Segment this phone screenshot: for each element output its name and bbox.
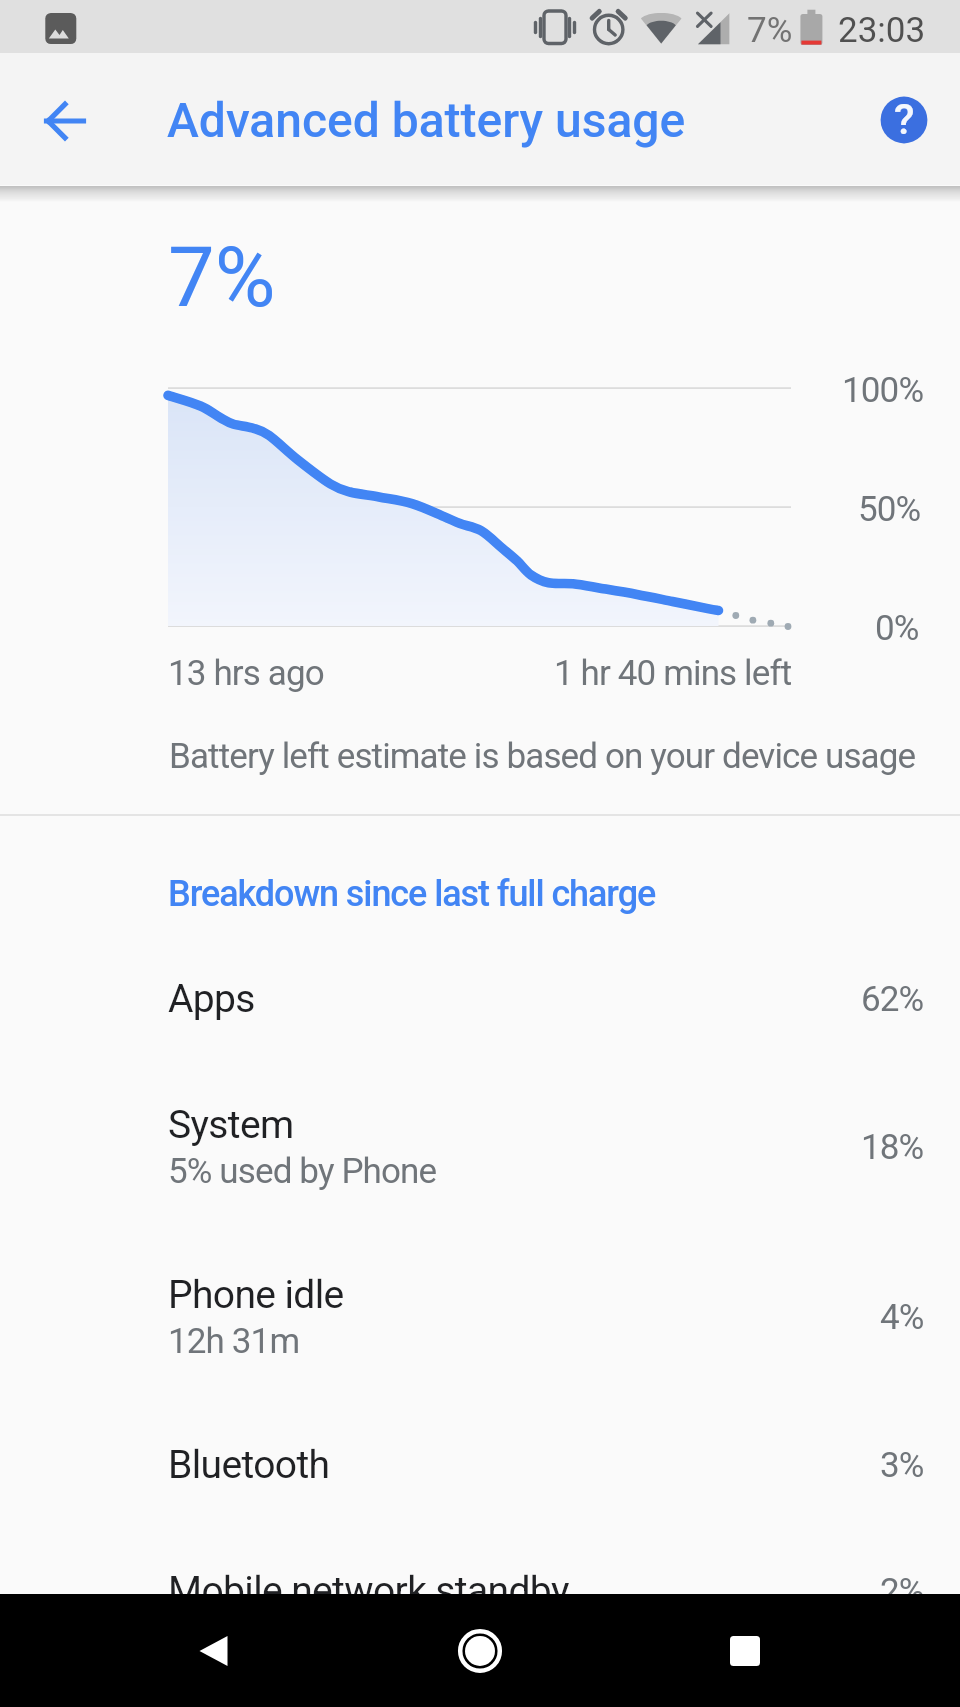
button[interactable]: System <box>0 1071 960 1241</box>
staticText: 1 hr 40 mins left <box>554 653 792 694</box>
staticText: Battery left estimate is based on your d… <box>169 736 916 777</box>
staticText: Advanced battery usage <box>167 92 686 148</box>
button[interactable]: Help <box>860 76 948 164</box>
staticText: 5% used by Phone <box>168 1151 437 1192</box>
staticText: 7% <box>747 10 793 51</box>
staticText: 18% <box>861 1127 924 1168</box>
staticText: Mobile network standby <box>168 1568 569 1614</box>
staticText: Phone idle <box>168 1272 344 1318</box>
staticText: 4% <box>880 1297 924 1338</box>
button[interactable]: Apps <box>0 945 960 1071</box>
staticText: Bluetooth <box>168 1442 330 1488</box>
staticText: 2% <box>880 1571 924 1612</box>
button[interactable]: Bluetooth <box>0 1411 960 1537</box>
staticText: Apps <box>168 976 255 1022</box>
staticText: 0% <box>875 608 919 649</box>
staticText: 12h 31m <box>168 1321 300 1362</box>
button[interactable]: Back <box>154 1594 274 1707</box>
button[interactable]: Recent apps <box>685 1594 805 1707</box>
staticText: 62% <box>861 979 924 1020</box>
staticText: System <box>168 1102 294 1148</box>
button[interactable]: Phone idle <box>0 1241 960 1411</box>
staticText: 3% <box>880 1445 924 1486</box>
staticText: Breakdown since last full charge <box>168 873 656 915</box>
staticText: 23:03 <box>838 10 926 51</box>
staticText: 7% <box>168 229 276 326</box>
button[interactable]: Home <box>420 1594 540 1707</box>
staticText: 50% <box>858 489 921 530</box>
button[interactable]: Back <box>21 77 109 165</box>
staticText: 13 hrs ago <box>168 653 324 694</box>
staticText: 100% <box>842 370 924 411</box>
staticText: ? <box>894 95 915 144</box>
button[interactable]: Mobile network standby <box>0 1537 960 1663</box>
